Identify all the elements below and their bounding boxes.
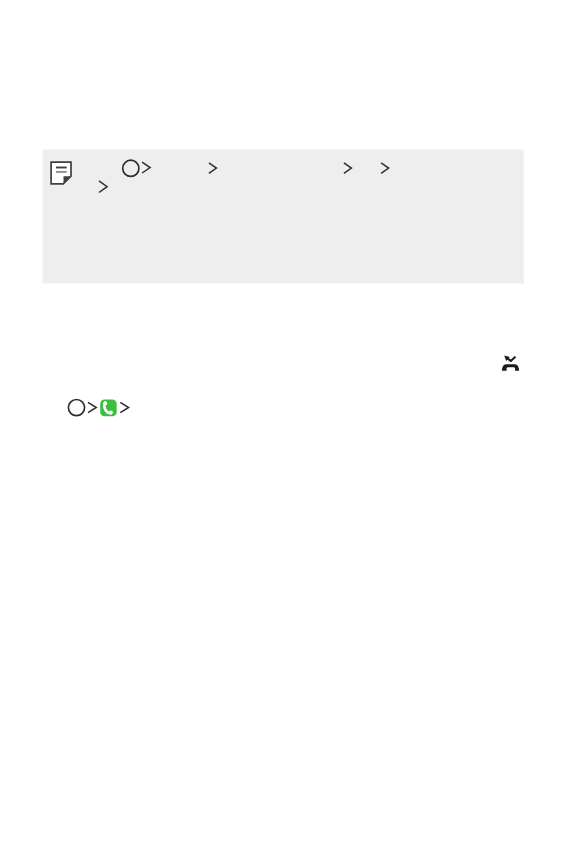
button[interactable]: Phone app <box>100 399 118 417</box>
button[interactable]: Call received <box>501 354 520 372</box>
button[interactable]: Note callout <box>43 150 524 284</box>
button[interactable]: Home button <box>68 399 86 417</box>
